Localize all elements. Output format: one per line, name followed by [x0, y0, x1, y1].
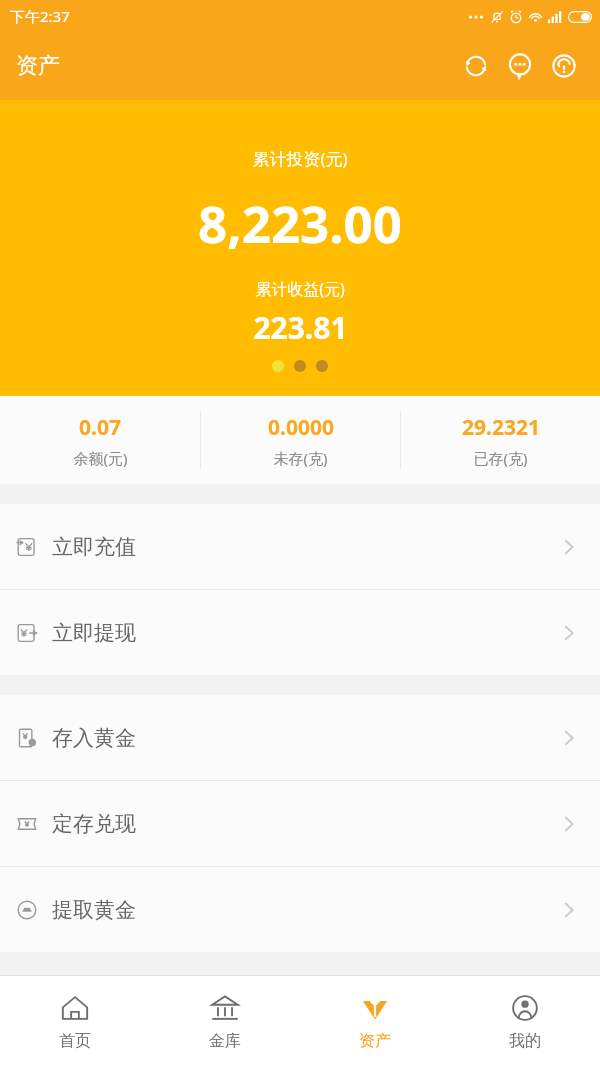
staticText: 定存兑现	[52, 811, 136, 837]
button[interactable]: 29.2321	[401, 396, 600, 484]
button[interactable]: 首页	[0, 976, 150, 1067]
staticText: 累计收益(元)	[255, 278, 345, 300]
staticText: 我的	[509, 1031, 541, 1051]
button[interactable]: 立即充值	[0, 504, 600, 589]
staticText: 已存(克)	[473, 448, 528, 468]
staticText: 立即提现	[52, 620, 136, 646]
button[interactable]: Refresh	[454, 44, 498, 88]
button[interactable]: 0.07	[0, 396, 200, 484]
button[interactable]: 0.0000	[201, 396, 400, 484]
button[interactable]: 资产	[300, 976, 450, 1067]
staticText: 223.81	[253, 307, 348, 348]
button[interactable]: 我的	[450, 976, 600, 1067]
button[interactable]: 提取黄金	[0, 867, 600, 952]
staticText: 余额(元)	[73, 448, 128, 468]
staticText: 金库	[209, 1031, 241, 1051]
button[interactable]: 存入黄金	[0, 695, 600, 780]
staticText: 存入黄金	[52, 725, 136, 751]
button[interactable]: 金库	[150, 976, 300, 1067]
button[interactable]: Help	[542, 44, 586, 88]
staticText: 0.0000	[268, 413, 334, 442]
staticText: 29.2321	[462, 413, 540, 442]
staticText: 未存(克)	[273, 448, 328, 468]
staticText: 首页	[59, 1031, 91, 1051]
button[interactable]: 定存兑现	[0, 781, 600, 866]
staticText: 0.07	[79, 413, 121, 442]
staticText: 下午2:37	[10, 6, 70, 26]
staticText: 资产	[359, 1031, 391, 1051]
staticText: 资产	[16, 52, 60, 80]
staticText: 8,223.00	[198, 188, 402, 257]
button[interactable]: 立即提现	[0, 590, 600, 675]
staticText: 累计投资(元)	[252, 147, 348, 170]
button[interactable]: Messages	[498, 44, 542, 88]
staticText: 提取黄金	[52, 897, 136, 923]
staticText: 立即充值	[52, 534, 136, 560]
